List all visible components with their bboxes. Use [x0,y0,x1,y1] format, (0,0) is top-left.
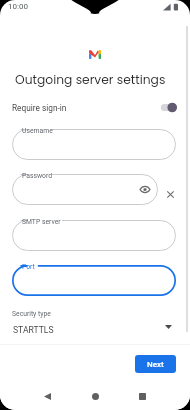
button[interactable]: Username [12,129,176,160]
button[interactable]: Show password [137,183,153,196]
button[interactable]: Next [135,355,176,373]
staticText: Require sign-in [12,103,67,113]
staticText: Username [22,127,53,135]
staticText: 10:00 [8,2,28,11]
staticText: STARTTLS [13,325,54,335]
button[interactable]: Back [35,382,59,410]
button[interactable]: Security type [0,306,190,338]
button[interactable]: Password [12,174,158,205]
button[interactable]: Port [12,265,176,296]
staticText: Password [22,172,53,180]
staticText: Outgoing server settings [15,71,166,88]
staticText: Port [22,263,35,271]
button[interactable]: Clear [163,187,178,201]
button[interactable]: SMTP server [12,220,176,251]
button[interactable]: Require sign-in [0,98,190,117]
button[interactable]: Home [83,382,107,410]
staticText: SMTP server [22,218,61,226]
staticText: Security type [12,310,51,318]
staticText: Next [147,360,164,369]
button[interactable]: Recents [130,382,154,410]
